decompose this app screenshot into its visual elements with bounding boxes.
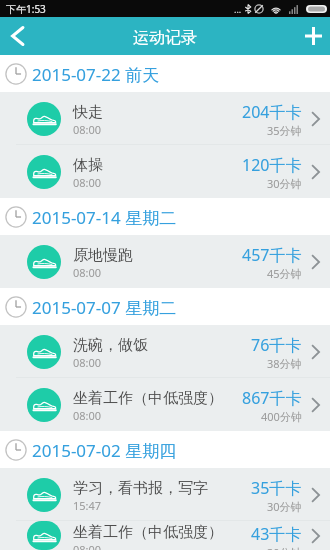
staticText: 30分钟 [267,545,302,550]
staticText: 457千卡 [242,244,302,266]
button[interactable]: 原地慢跑 [0,235,330,288]
staticText: 快走 [73,103,103,122]
button[interactable]: 洗碗，做饭 [0,325,330,378]
staticText: 坐着工作（中低强度） [73,523,223,542]
staticText: 2015-07-14 星期二 [32,206,177,229]
staticText: 2015-07-07 星期二 [32,296,177,319]
button[interactable]: Add [296,17,330,55]
staticText: 76千卡 [251,334,302,356]
staticText: 43千卡 [251,523,302,545]
staticText: 30分钟 [267,499,302,514]
staticText: 30分钟 [267,176,302,191]
staticText: 45分钟 [267,266,302,281]
staticText: 120千卡 [242,154,302,176]
staticText: 运动记录 [133,28,197,48]
button[interactable]: 坐着工作（中低强度） [0,378,330,431]
staticText: 原地慢跑 [73,246,133,265]
staticText: 867千卡 [242,387,302,409]
staticText: 2015-07-02 星期四 [32,439,177,462]
staticText: 204千卡 [242,101,302,123]
staticText: 2015-07-22 前天 [32,63,160,86]
staticText: 08:00 [73,175,102,190]
button[interactable]: 体操 [0,145,330,198]
staticText: 35千卡 [251,477,302,499]
staticText: 08:00 [73,355,102,370]
staticText: 08:00 [73,408,102,423]
staticText: ... [234,3,242,15]
staticText: 400分钟 [261,409,302,424]
button[interactable]: 坐着工作（中低强度） [0,521,330,550]
staticText: 15:47 [73,498,102,513]
button[interactable]: 快走 [0,92,330,145]
button[interactable]: Back [0,17,34,55]
staticText: 洗碗，做饭 [73,336,148,355]
button[interactable]: 学习，看书报，写字 [0,468,330,521]
staticText: 坐着工作（中低强度） [73,389,223,408]
staticText: 08:00 [73,265,102,280]
staticText: 体操 [73,156,103,175]
staticText: 下午1:53 [6,2,46,16]
staticText: 学习，看书报，写字 [73,479,208,498]
staticText: 35分钟 [267,123,302,138]
staticText: 08:00 [73,122,102,137]
staticText: 38分钟 [267,356,302,371]
staticText: 08:00 [73,542,102,550]
